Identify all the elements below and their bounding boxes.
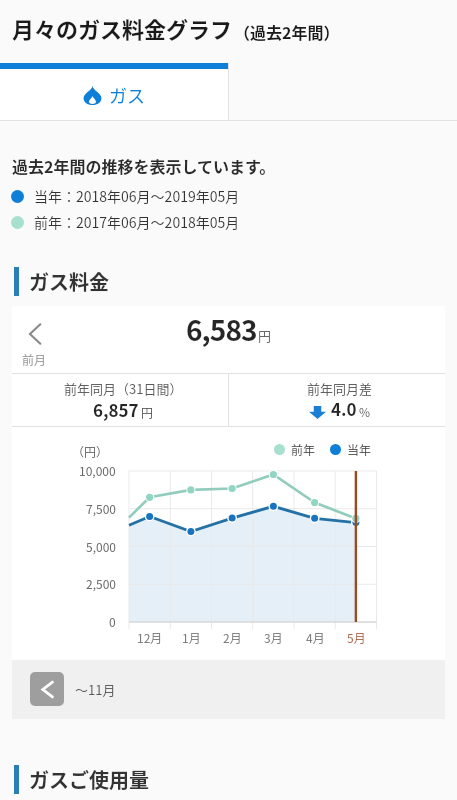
staticText: 当年：2018年06月〜2019年05月 xyxy=(34,186,240,206)
staticText: ガスご使用量 xyxy=(29,765,149,794)
staticText: 円 xyxy=(141,404,154,421)
staticText: 7,500 xyxy=(86,500,116,517)
staticText: 10,000 xyxy=(79,462,116,479)
staticText: 0 xyxy=(109,613,116,630)
staticText: 当年 xyxy=(347,441,372,458)
staticText: 過去2年間の推移を表示しています。 xyxy=(12,154,276,177)
staticText: % xyxy=(359,403,371,420)
staticText: 6,857 xyxy=(93,397,139,422)
staticText: 5,000 xyxy=(86,538,116,555)
button[interactable]: ガス xyxy=(0,63,228,120)
staticText: 4.0 xyxy=(331,396,357,421)
staticText: 6,583 xyxy=(186,309,257,350)
staticText: 4月 xyxy=(306,629,325,646)
staticText: 〜11月 xyxy=(75,680,116,699)
staticText: 12月 xyxy=(137,629,163,646)
staticText: 3月 xyxy=(264,629,283,646)
staticText: 前年 xyxy=(291,441,316,458)
button[interactable]: 前へ xyxy=(30,672,64,706)
staticText: 円 xyxy=(258,326,272,345)
staticText: 5月 xyxy=(347,629,366,646)
staticText: （過去2年間） xyxy=(234,20,340,43)
staticText: （円） xyxy=(72,443,109,460)
staticText: 前年同月差 xyxy=(307,379,373,398)
staticText: 2,500 xyxy=(86,575,116,592)
staticText: 前年同月（31日間） xyxy=(64,379,183,398)
staticText: 前月 xyxy=(22,351,47,368)
staticText: ガス xyxy=(109,82,145,108)
staticText: 2月 xyxy=(223,629,242,646)
staticText: 前年：2017年06月〜2018年05月 xyxy=(34,212,240,232)
staticText: ガス料金 xyxy=(29,267,109,296)
staticText: 月々のガス料金グラフ xyxy=(12,12,233,44)
staticText: 1月 xyxy=(182,629,201,646)
button[interactable]: 前月 xyxy=(22,323,47,368)
